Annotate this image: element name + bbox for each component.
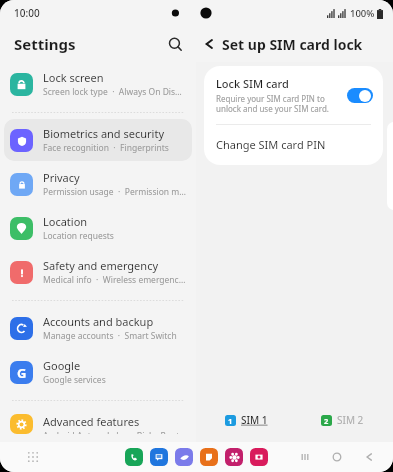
staticText: Google: [43, 358, 81, 373]
staticText: Require your SIM card PIN to unlock and …: [216, 93, 339, 114]
button[interactable]: Advanced features: [4, 407, 192, 441]
staticText: Lock screen: [43, 70, 104, 85]
staticText: Location: [43, 214, 88, 229]
button[interactable]: Privacy: [4, 163, 192, 205]
button[interactable]: Samsung Notes: [200, 448, 218, 466]
staticText: G: [17, 364, 27, 382]
button[interactable]: Phone: [125, 448, 143, 466]
staticText: Lock SIM card: [216, 76, 289, 91]
button[interactable]: Apps: [22, 446, 44, 468]
button[interactable]: G: [4, 351, 192, 393]
button[interactable]: Back: [359, 447, 379, 467]
staticText: 100%: [350, 7, 375, 20]
button[interactable]: Lock screen: [4, 63, 192, 105]
button[interactable]: Safety and emergency: [4, 251, 192, 293]
staticText: Biometrics and security: [43, 126, 164, 141]
button[interactable]: Camera: [250, 448, 268, 466]
staticText: 2: [324, 416, 329, 426]
staticText: Privacy: [43, 170, 80, 185]
staticText: Settings: [14, 34, 76, 54]
staticText: Change SIM card PIN: [216, 137, 326, 152]
staticText: Face recognition · Fingerprints: [43, 142, 169, 154]
button[interactable]: Gallery: [225, 448, 243, 466]
button[interactable]: Home: [327, 447, 347, 467]
staticText: Google services: [43, 374, 106, 386]
button[interactable]: Messages: [150, 448, 168, 466]
staticText: Medical info · Wireless emergency alerts: [43, 274, 186, 286]
button[interactable]: Accounts and backup: [4, 307, 192, 349]
staticText: Safety and emergency: [43, 258, 159, 273]
staticText: Permission usage · Permission manager: [43, 186, 186, 198]
staticText: SIM 2: [337, 413, 364, 427]
button[interactable]: Lock SIM card: [204, 66, 383, 124]
button[interactable]: Internet: [175, 448, 193, 466]
button[interactable]: Recents: [295, 447, 315, 467]
button[interactable]: 1: [222, 410, 271, 430]
button[interactable]: Change SIM card PIN: [204, 125, 383, 165]
staticText: Screen lock type · Always On Display: [43, 86, 186, 98]
button[interactable]: Biometrics and security: [4, 119, 192, 161]
button[interactable]: 2: [318, 410, 367, 430]
staticText: Location requests: [43, 230, 114, 242]
staticText: Set up SIM card lock: [222, 35, 363, 54]
staticText: Android Auto · Labs · Bixby Routines: [43, 430, 186, 434]
staticText: SIM 1: [241, 413, 268, 427]
button[interactable]: Lock SIM card toggle: [347, 88, 373, 103]
staticText: Manage accounts · Smart Switch: [43, 330, 177, 342]
staticText: Advanced features: [43, 414, 140, 429]
button[interactable]: Back: [196, 31, 222, 57]
staticText: 10:00: [14, 6, 40, 20]
staticText: Accounts and backup: [43, 314, 154, 329]
button[interactable]: Location: [4, 207, 192, 249]
staticText: 1: [228, 416, 233, 426]
button[interactable]: Search: [160, 29, 190, 59]
